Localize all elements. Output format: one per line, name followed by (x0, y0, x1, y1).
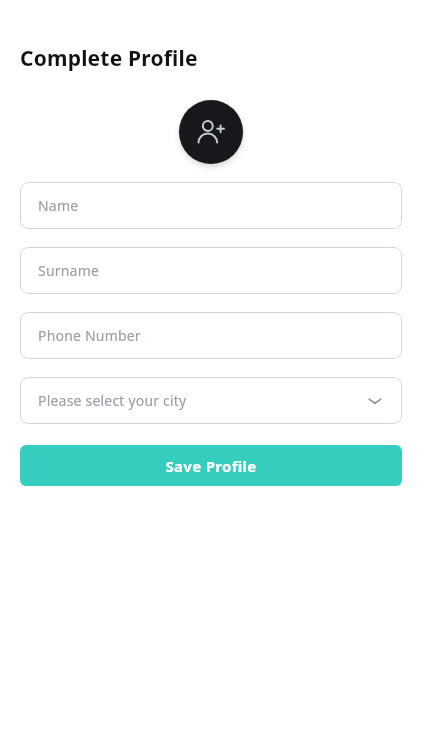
staticText: Name (38, 196, 79, 215)
staticText: Complete Profile (20, 44, 198, 73)
button[interactable]: Please select your city (20, 377, 402, 424)
staticText: Phone Number (38, 326, 141, 345)
staticText: Surname (38, 261, 100, 280)
button[interactable]: Name (20, 182, 402, 229)
button[interactable]: Save Profile (20, 445, 402, 486)
staticText: Save Profile (165, 456, 257, 476)
staticText: Please select your city (38, 391, 187, 410)
button[interactable]: Add profile photo (179, 100, 243, 164)
button[interactable]: Phone Number (20, 312, 402, 359)
button[interactable]: Surname (20, 247, 402, 294)
